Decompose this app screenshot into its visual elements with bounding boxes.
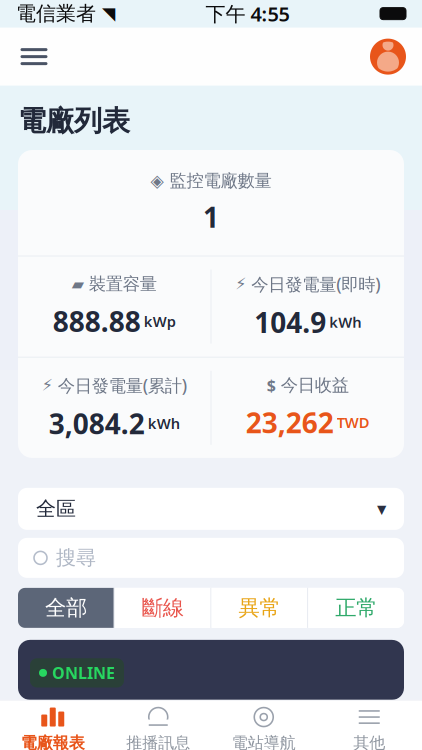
staticText: ◈ [150,171,163,190]
button[interactable]: 異常 [211,588,307,628]
staticText: ◥ [102,4,115,23]
staticText: kWh [148,414,180,433]
staticText: 推播訊息 [126,733,190,750]
button[interactable]: 電站導航 [211,706,316,750]
staticText: 電信業者 [16,1,96,26]
staticText: ⚡︎ [42,376,53,394]
button[interactable]: 全區 [18,488,404,530]
staticText: 1 [203,198,219,235]
button[interactable]: 斷線 [115,588,211,628]
staticText: TWD [337,413,370,432]
staticText: 異常 [238,595,280,621]
button[interactable]: 全部 [18,588,114,628]
button[interactable]: 正常 [308,588,404,628]
staticText: 全區 [36,497,76,521]
staticText: 電廠列表 [18,104,130,138]
button[interactable]: Menu [12,35,56,79]
staticText: ▰ [72,275,84,293]
button[interactable] [18,538,404,578]
staticText: 全部 [45,595,87,621]
staticText: 搜尋 [56,546,96,570]
staticText: 電廠報表 [21,733,85,750]
staticText: kWh [329,312,361,332]
button[interactable]: 其他 [316,706,422,750]
staticText: 888.88 [53,303,141,340]
staticText: 3,084.2 [49,405,145,442]
staticText: ONLINE [52,662,115,683]
staticText: ⚡︎ [235,275,246,293]
button[interactable]: Account [366,35,410,79]
staticText: ▾ [377,498,386,519]
staticText: 104.9 [254,303,326,341]
staticText: $ [267,375,276,396]
staticText: 電站導航 [232,733,296,750]
staticText: 裝置容量 [89,273,157,295]
staticText: 斷線 [142,595,184,621]
button[interactable]: 電廠報表 [0,706,105,750]
staticText: 其他 [353,733,385,750]
staticText: 正常 [335,595,377,621]
staticText: 監控電廠數量 [169,170,271,191]
staticText: 今日收益 [281,374,349,396]
staticText: 23,262 [246,404,334,441]
button[interactable]: 推播訊息 [105,706,211,750]
staticText: 今日發電量(即時) [251,272,380,295]
staticText: 今日發電量(累計) [58,374,187,397]
staticText: 下午 4:55 [205,0,289,27]
staticText: kWp [144,311,176,331]
